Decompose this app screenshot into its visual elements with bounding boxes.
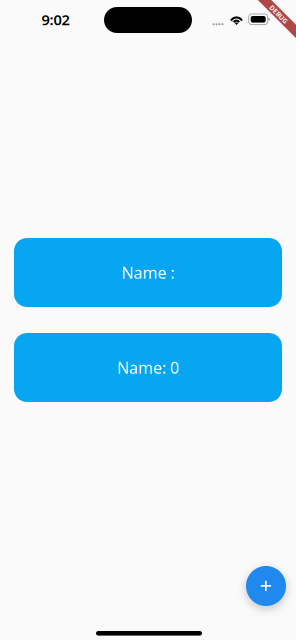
staticText: Name :	[121, 262, 174, 283]
staticText: 9:02	[41, 10, 69, 29]
button[interactable]: Add	[246, 566, 286, 606]
button[interactable]: Name :	[14, 238, 282, 307]
staticText: DEBUG	[267, 10, 290, 19]
button[interactable]: Name: 0	[14, 333, 282, 402]
staticText: Name: 0	[117, 357, 179, 378]
